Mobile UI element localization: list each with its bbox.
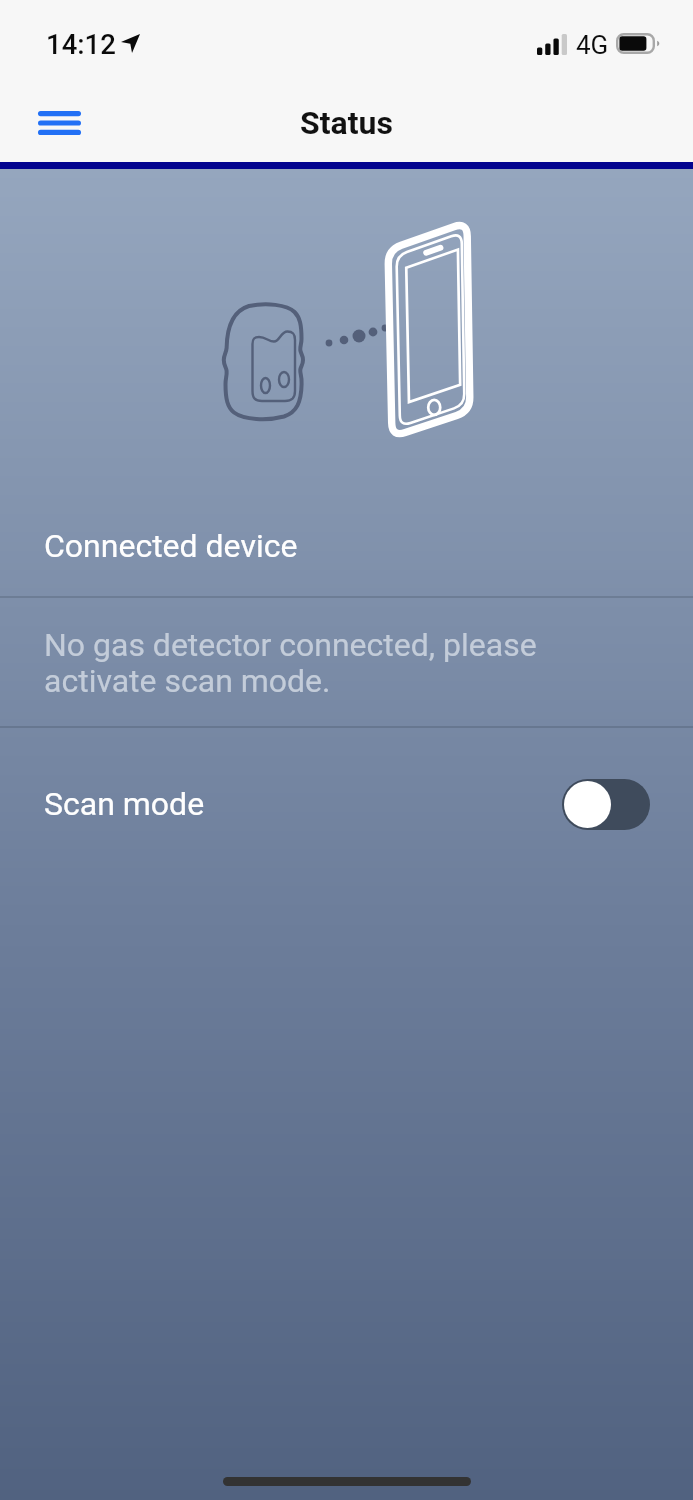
button[interactable]: Connected device [0, 508, 693, 596]
staticText: 4G [576, 30, 609, 60]
staticText: 14:12 [46, 28, 116, 60]
staticText: Connected device [44, 527, 298, 565]
staticText: Scan mode [44, 785, 205, 823]
button[interactable]: No gas detector connected, please activa… [0, 598, 693, 726]
staticText: Status [300, 104, 393, 142]
staticText: No gas detector connected, please activa… [44, 626, 565, 699]
button[interactable]: Scan mode toggle [562, 779, 650, 830]
button[interactable]: Scan mode [0, 728, 693, 881]
button[interactable]: Open navigation menu [26, 92, 92, 154]
